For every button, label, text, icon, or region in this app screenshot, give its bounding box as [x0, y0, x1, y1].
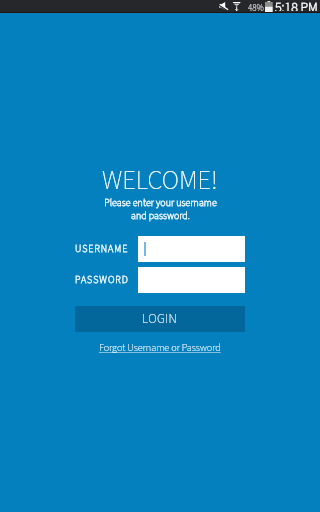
other: Sound muted: [219, 2, 229, 10]
staticText: PASSWORD: [75, 273, 129, 287]
staticText: Please enter your username and password.: [104, 196, 217, 223]
staticText: 5:18 PM: [275, 0, 318, 11]
button[interactable]: Forgot Username or Password: [99, 341, 221, 356]
button[interactable]: USERNAME: [138, 236, 245, 262]
staticText: WELCOME!: [102, 162, 218, 200]
staticText: USERNAME: [75, 242, 129, 256]
staticText: LOGIN: [142, 310, 178, 329]
button[interactable]: LOGIN: [75, 306, 245, 332]
other: Wi-Fi: [232, 1, 242, 11]
staticText: 48%: [248, 2, 264, 15]
